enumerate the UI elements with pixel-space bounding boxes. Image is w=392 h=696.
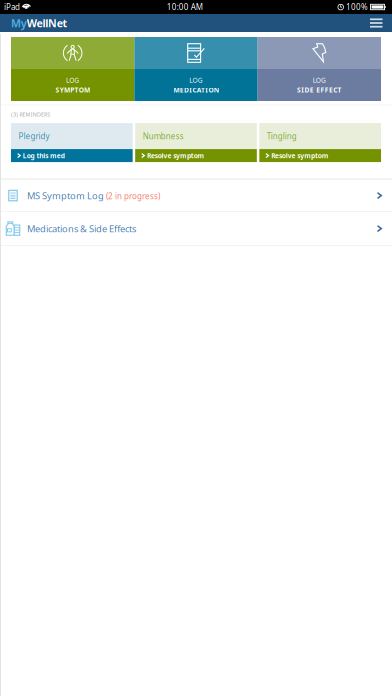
staticText: SYMPTOM xyxy=(55,85,90,94)
staticText: Log this med xyxy=(23,151,65,160)
button[interactable]: MS Symptom Log xyxy=(0,180,392,211)
button[interactable]: Menu xyxy=(362,13,391,32)
staticText: iPad xyxy=(4,2,20,12)
button[interactable]: LOG xyxy=(11,37,134,101)
staticText: Resolve symptom xyxy=(271,151,329,160)
staticText: LOG xyxy=(189,76,203,84)
staticText: Medications & Side Effects xyxy=(27,222,136,235)
staticText: WellNet xyxy=(27,16,68,30)
staticText: LOG xyxy=(66,76,79,84)
staticText: Numbness xyxy=(143,131,184,141)
staticText: Tingling xyxy=(267,131,297,141)
staticText: MEDICATION xyxy=(173,85,219,94)
staticText: Plegridy xyxy=(18,131,49,141)
staticText: My xyxy=(11,16,27,30)
staticText: 10:00 AM xyxy=(167,2,203,12)
staticText: Resolve symptom xyxy=(147,151,205,160)
staticText: (2 in progress) xyxy=(106,191,160,201)
button[interactable]: Plegridy xyxy=(11,123,133,162)
button[interactable]: Tingling xyxy=(259,123,381,162)
staticText: 100% xyxy=(346,2,368,12)
staticText: MS Symptom Log xyxy=(27,189,104,202)
staticText: (3) REMINDERS xyxy=(11,111,50,118)
staticText: LOG xyxy=(313,76,326,84)
button[interactable]: Numbness xyxy=(135,123,257,162)
button[interactable]: LOG xyxy=(258,37,381,101)
button[interactable]: LOG xyxy=(134,37,258,101)
button[interactable]: Medications & Side Effects xyxy=(0,212,392,245)
staticText: SIDE EFFECT xyxy=(297,85,342,94)
